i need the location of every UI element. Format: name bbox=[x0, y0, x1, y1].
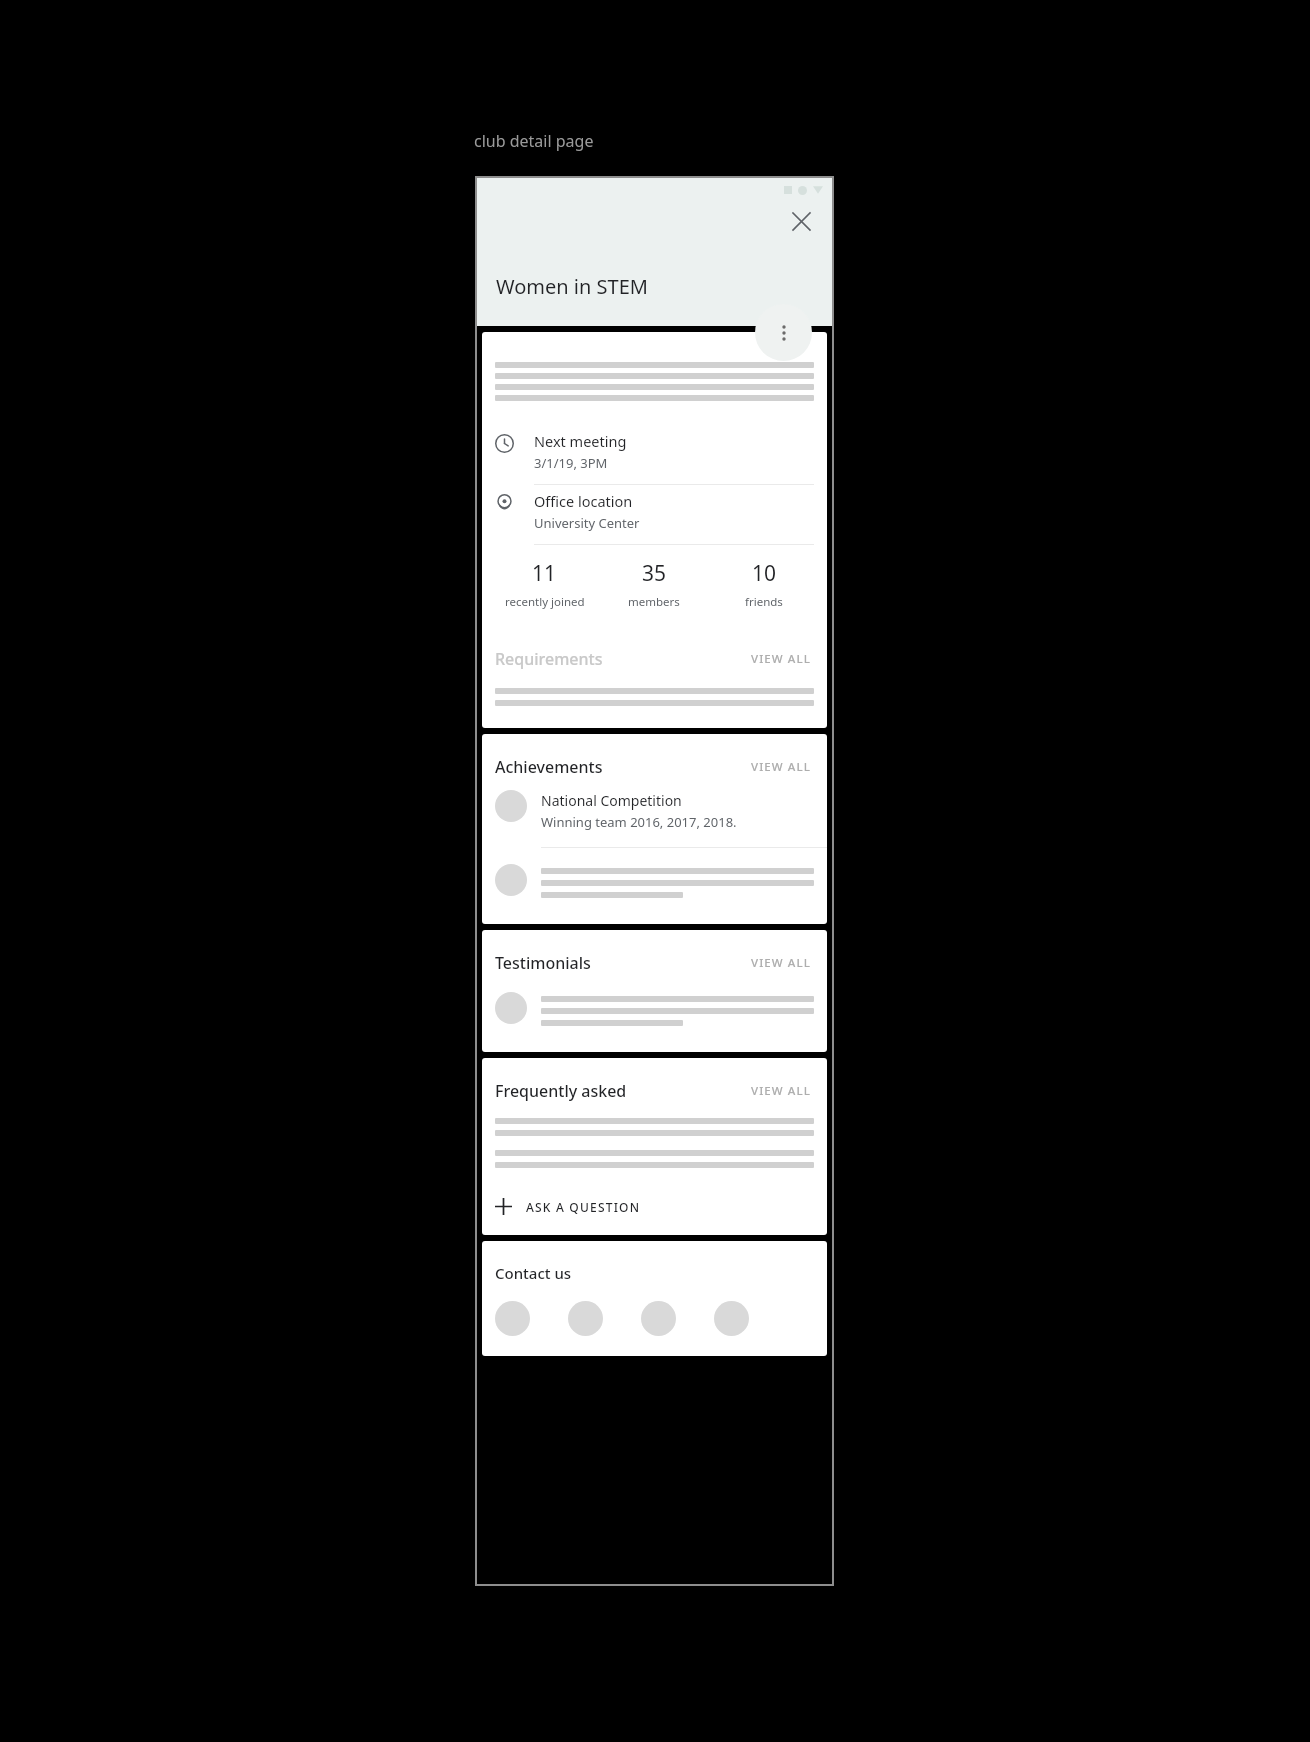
button[interactable]: ASK A QUESTION bbox=[482, 1194, 827, 1229]
button[interactable]: Close bbox=[784, 204, 818, 238]
button[interactable]: VIEW ALL bbox=[748, 1080, 814, 1102]
staticText: National Competition bbox=[541, 791, 682, 810]
staticText: 10 bbox=[752, 559, 777, 588]
staticText: recently joined bbox=[505, 594, 585, 610]
staticText: Testimonials bbox=[495, 952, 591, 974]
button[interactable]: VIEW ALL bbox=[748, 952, 814, 974]
button[interactable]: Next meeting bbox=[482, 425, 827, 485]
button[interactable]: Office location bbox=[482, 485, 827, 545]
staticText: Women in STEM bbox=[496, 273, 648, 300]
button[interactable]: More options bbox=[755, 304, 812, 361]
button[interactable]: 35 bbox=[599, 559, 709, 610]
button[interactable]: Contact method 3 bbox=[641, 1301, 676, 1336]
staticText: VIEW ALL bbox=[751, 955, 811, 971]
button[interactable]: 10 bbox=[709, 559, 819, 610]
staticText: 35 bbox=[642, 559, 667, 588]
staticText: ASK A QUESTION bbox=[526, 1199, 641, 1215]
staticText: VIEW ALL bbox=[751, 759, 811, 775]
staticText: VIEW ALL bbox=[751, 651, 811, 667]
button[interactable]: 11 bbox=[490, 559, 599, 610]
staticText: 3/1/19, 3PM bbox=[534, 454, 608, 472]
staticText: University Center bbox=[534, 514, 640, 532]
button[interactable]: Contact method 4 bbox=[714, 1301, 749, 1336]
staticText: club detail page bbox=[474, 130, 594, 152]
staticText: 11 bbox=[532, 559, 557, 588]
staticText: Achievements bbox=[495, 756, 603, 778]
staticText: members bbox=[628, 594, 680, 610]
button[interactable]: Contact method 2 bbox=[568, 1301, 603, 1336]
button[interactable]: VIEW ALL bbox=[748, 756, 814, 778]
staticText: Contact us bbox=[495, 1263, 572, 1283]
staticText: Frequently asked bbox=[495, 1080, 627, 1102]
staticText: Next meeting bbox=[534, 431, 627, 451]
staticText: Requirements bbox=[495, 648, 603, 670]
button[interactable]: VIEW ALL bbox=[748, 648, 814, 670]
staticText: VIEW ALL bbox=[751, 1083, 811, 1099]
staticText: Office location bbox=[534, 491, 633, 511]
staticText: Winning team 2016, 2017, 2018. bbox=[541, 813, 737, 831]
button[interactable]: Contact method 1 bbox=[495, 1301, 530, 1336]
staticText: friends bbox=[745, 594, 783, 610]
